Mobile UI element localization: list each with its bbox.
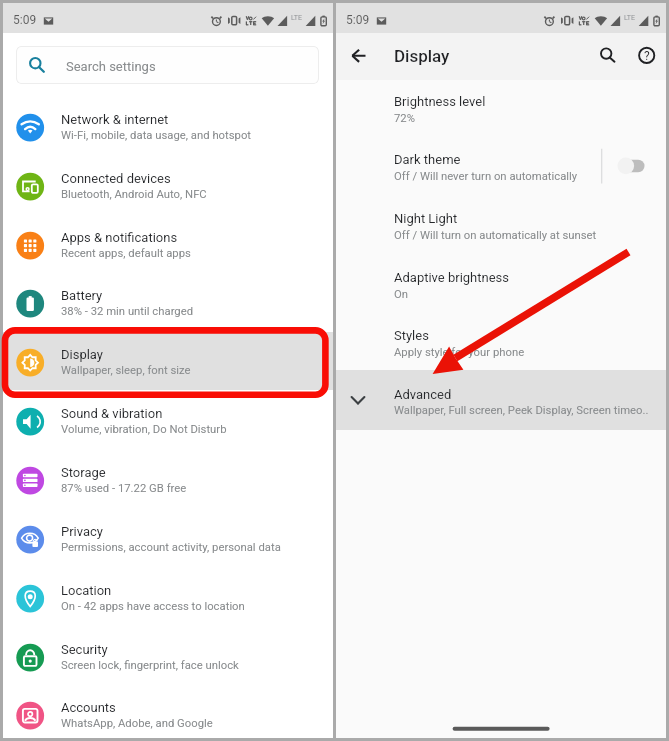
staticText: Advanced: [394, 387, 452, 402]
button[interactable]: Accounts: [3, 685, 333, 741]
staticText: Wi-Fi, mobile, data usage, and hotspot: [61, 129, 252, 142]
button[interactable]: Apps & notifications: [3, 215, 333, 273]
button[interactable]: Network & internet: [3, 97, 333, 155]
staticText: Recent apps, default apps: [61, 247, 191, 260]
staticText: Apps & notifications: [61, 230, 178, 245]
staticText: Off / Will turn on automatically at suns…: [394, 229, 597, 242]
button[interactable]: Security: [3, 627, 333, 685]
button[interactable]: Search: [592, 41, 621, 70]
staticText: Bluetooth, Android Auto, NFC: [61, 188, 207, 201]
staticText: Search settings: [66, 59, 156, 74]
staticText: ?: [644, 49, 650, 63]
button[interactable]: Help: [632, 41, 661, 70]
staticText: Wallpaper, Full screen, Peek Display, Sc…: [394, 404, 649, 417]
staticText: Brightness level: [394, 94, 486, 109]
staticText: LTE: [291, 14, 302, 22]
staticText: Security: [61, 642, 108, 657]
staticText: 38% - 32 min until charged: [61, 305, 194, 318]
staticText: Volume, vibration, Do Not Disturb: [61, 423, 227, 436]
staticText: Network & internet: [61, 112, 169, 127]
staticText: Sound & vibration: [61, 406, 163, 421]
staticText: Adaptive brightness: [394, 270, 510, 285]
staticText: Display: [61, 347, 103, 362]
staticText: Screen lock, fingerprint, face unlock: [61, 659, 239, 672]
staticText: Accounts: [61, 700, 116, 715]
button[interactable]: Battery: [3, 273, 333, 331]
staticText: Connected devices: [61, 171, 171, 186]
staticText: Apply style for your phone: [394, 346, 525, 359]
button[interactable]: Privacy: [3, 509, 333, 567]
button[interactable]: Brightness level: [336, 78, 666, 136]
staticText: 5:09: [346, 13, 370, 27]
button[interactable]: Advanced: [336, 370, 666, 430]
button[interactable]: Connected devices: [3, 156, 333, 214]
button[interactable]: Search settings: [16, 46, 319, 84]
staticText: Styles: [394, 328, 429, 343]
staticText: Dark theme: [394, 152, 461, 167]
button[interactable]: Night Light: [336, 195, 666, 253]
button[interactable]: Back: [342, 41, 374, 73]
staticText: 5:09: [13, 13, 37, 27]
staticText: Location: [61, 583, 112, 598]
staticText: LTE: [624, 14, 635, 22]
staticText: Permissions, account activity, personal …: [61, 541, 281, 554]
staticText: On: [394, 288, 409, 301]
staticText: 87% used - 17.22 GB free: [61, 482, 187, 495]
staticText: Night Light: [394, 211, 458, 226]
staticText: Off / Will never turn on automatically: [394, 170, 578, 183]
staticText: Display: [394, 46, 450, 66]
button[interactable]: Styles: [336, 312, 666, 370]
button[interactable]: Display: [3, 332, 333, 390]
button[interactable]: Storage: [3, 450, 333, 508]
button[interactable]: Adaptive brightness: [336, 254, 666, 312]
staticText: Battery: [61, 288, 103, 303]
staticText: WhatsApp, Adobe, and Google: [61, 717, 213, 730]
staticText: On - 42 apps have access to location: [61, 600, 245, 613]
staticText: 72%: [394, 112, 415, 125]
staticText: Storage: [61, 465, 106, 480]
button[interactable]: Sound & vibration: [3, 391, 333, 449]
staticText: Privacy: [61, 524, 103, 539]
staticText: Wallpaper, sleep, font size: [61, 364, 191, 377]
button[interactable]: Dark theme: [336, 136, 666, 194]
button[interactable]: Location: [3, 568, 333, 626]
